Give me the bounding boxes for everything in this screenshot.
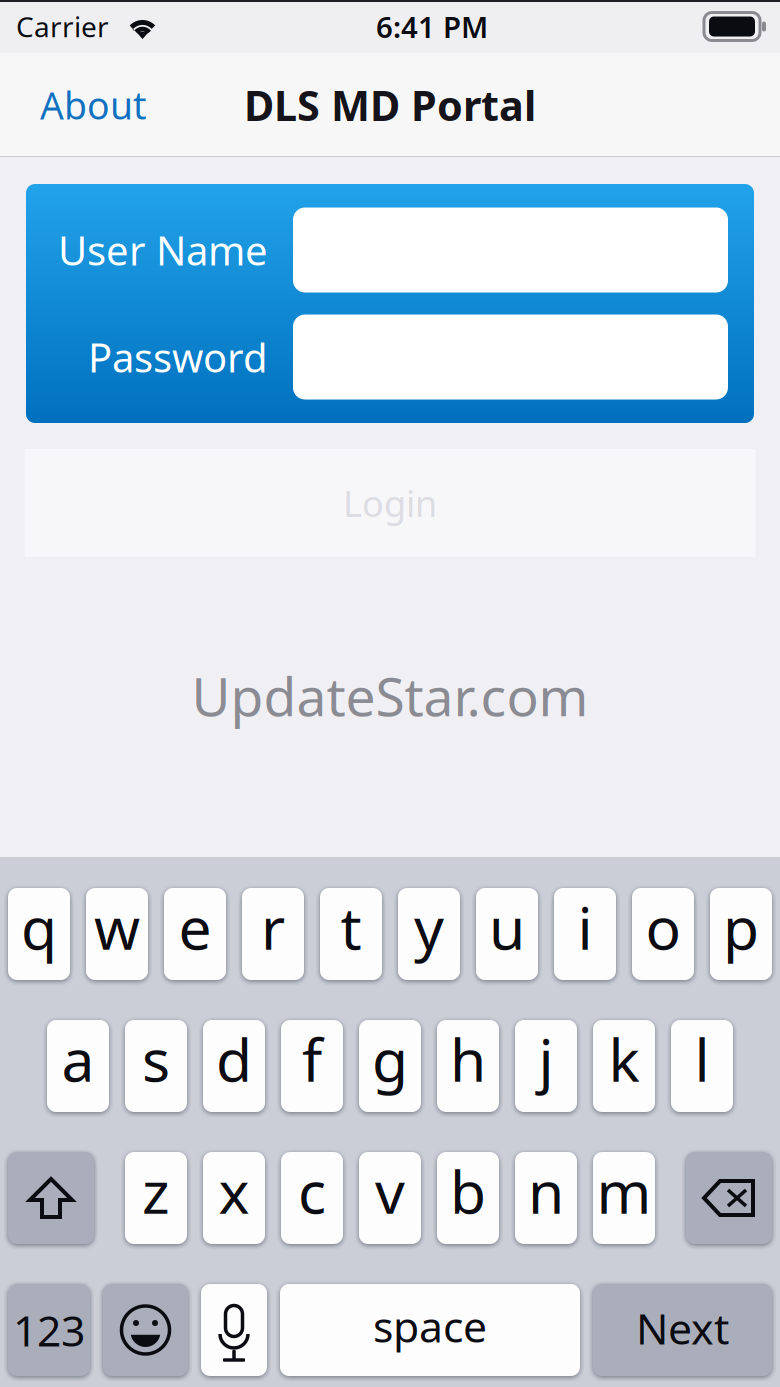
staticText: Next xyxy=(636,1300,729,1356)
staticText: q xyxy=(21,888,57,966)
button[interactable]: Emoji xyxy=(103,1284,188,1376)
staticText: g xyxy=(372,1020,408,1098)
staticText: e xyxy=(178,888,211,966)
staticText: j xyxy=(538,1020,553,1098)
button[interactable]: s xyxy=(125,1020,187,1112)
button[interactable]: w xyxy=(86,888,148,980)
staticText: Carrier xyxy=(16,8,109,45)
button[interactable]: z xyxy=(125,1152,187,1244)
button[interactable]: y xyxy=(398,888,460,980)
button[interactable]: c xyxy=(281,1152,343,1244)
staticText: Password xyxy=(88,330,268,383)
button[interactable]: l xyxy=(671,1020,733,1112)
staticText: l xyxy=(694,1020,709,1098)
staticText: m xyxy=(596,1152,651,1230)
button[interactable]: About xyxy=(30,66,156,144)
staticText: n xyxy=(528,1152,564,1230)
button[interactable]: f xyxy=(281,1020,343,1112)
button[interactable]: x xyxy=(203,1152,265,1244)
staticText: w xyxy=(94,888,140,966)
button[interactable]: p xyxy=(710,888,772,980)
staticText: a xyxy=(61,1020,94,1098)
button[interactable]: t xyxy=(320,888,382,980)
staticText: r xyxy=(261,888,285,966)
staticText: space xyxy=(373,1298,487,1354)
staticText: f xyxy=(302,1020,322,1098)
button[interactable]: d xyxy=(203,1020,265,1112)
button[interactable]: 123 xyxy=(8,1284,90,1376)
button[interactable]: q xyxy=(8,888,70,980)
staticText: Login xyxy=(343,479,437,527)
button[interactable]: n xyxy=(515,1152,577,1244)
staticText: p xyxy=(723,888,759,966)
button[interactable]: Delete xyxy=(686,1152,772,1244)
button[interactable]: i xyxy=(554,888,616,980)
button[interactable]: k xyxy=(593,1020,655,1112)
staticText: o xyxy=(645,888,680,966)
button[interactable]: space xyxy=(280,1284,580,1376)
button[interactable]: o xyxy=(632,888,694,980)
staticText: c xyxy=(298,1152,326,1230)
button[interactable]: j xyxy=(515,1020,577,1112)
staticText: i xyxy=(577,888,592,966)
staticText: y xyxy=(414,888,444,966)
staticText: x xyxy=(218,1152,249,1230)
staticText: About xyxy=(40,80,146,130)
staticText: z xyxy=(142,1152,170,1230)
button[interactable]: g xyxy=(359,1020,421,1112)
staticText: DLS MD Portal xyxy=(244,78,536,132)
staticText: s xyxy=(142,1020,170,1098)
button[interactable]: b xyxy=(437,1152,499,1244)
button[interactable]: m xyxy=(593,1152,655,1244)
staticText: k xyxy=(608,1020,639,1098)
staticText: UpdateStar.com xyxy=(191,660,588,731)
staticText: b xyxy=(450,1152,486,1230)
button[interactable]: u xyxy=(476,888,538,980)
button[interactable]: a xyxy=(47,1020,109,1112)
button[interactable]: r xyxy=(242,888,304,980)
button[interactable]: Next xyxy=(593,1284,772,1376)
staticText: 123 xyxy=(13,1302,85,1358)
staticText: h xyxy=(450,1020,486,1098)
button[interactable]: Dictate xyxy=(201,1284,267,1376)
staticText: d xyxy=(216,1020,252,1098)
button[interactable]: e xyxy=(164,888,226,980)
button[interactable]: h xyxy=(437,1020,499,1112)
staticText: u xyxy=(489,888,525,966)
staticText: t xyxy=(340,888,361,966)
staticText: 6:41 PM xyxy=(376,7,488,46)
button[interactable]: v xyxy=(359,1152,421,1244)
staticText: User Name xyxy=(58,223,268,276)
button[interactable]: Shift xyxy=(8,1152,94,1244)
staticText: v xyxy=(375,1152,405,1230)
